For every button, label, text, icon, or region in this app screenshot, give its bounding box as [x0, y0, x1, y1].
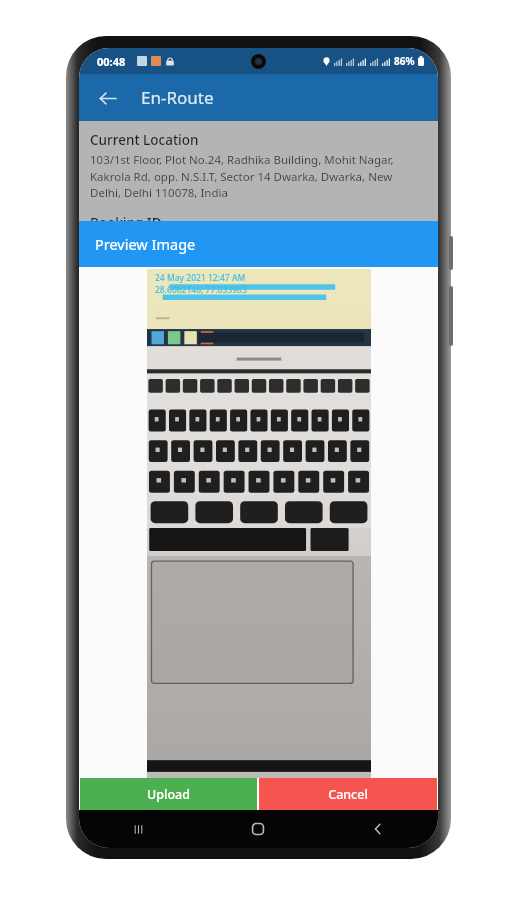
button[interactable]: Back — [87, 78, 127, 118]
button[interactable]: Upload — [80, 778, 257, 810]
staticText: 00:48 — [97, 54, 126, 69]
button[interactable]: Home — [198, 810, 318, 848]
staticText: 1213525 — [90, 235, 137, 251]
staticText: Current Location — [90, 131, 199, 149]
staticText: Booking ID — [90, 214, 162, 232]
button[interactable]: Cancel — [259, 778, 437, 810]
staticText: 86% — [394, 54, 415, 68]
staticText: Upload — [147, 786, 190, 803]
staticText: 24 May 2021 12:47 AM — [155, 272, 246, 284]
button[interactable]: Recent apps — [79, 810, 198, 848]
staticText: Cancel — [328, 786, 368, 803]
staticText: Preview Image — [95, 234, 196, 254]
staticText: 28.6082146, 77.033983 — [155, 284, 247, 296]
staticText: 103/1st Floor, Plot No.24, Radhika Build… — [90, 152, 424, 200]
button[interactable]: Back — [318, 810, 438, 848]
staticText: En-Route — [141, 86, 214, 109]
